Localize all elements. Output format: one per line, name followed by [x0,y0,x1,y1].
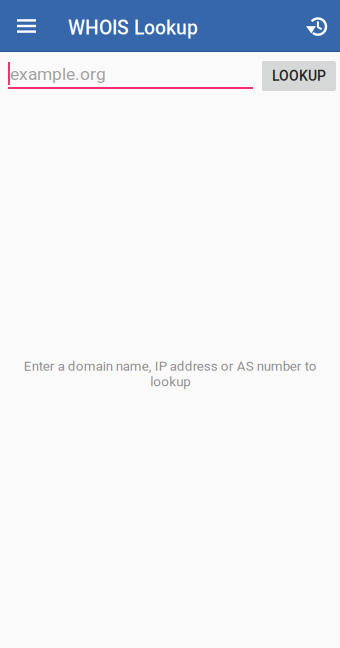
button[interactable]: Menu [0,0,53,52]
staticText: example.org [10,64,106,84]
staticText: Enter a domain name, IP address or AS nu… [23,358,316,390]
button[interactable]: LOOKUP [262,61,336,91]
staticText: LOOKUP [272,68,326,84]
staticText: WHOIS Lookup [68,17,198,39]
button[interactable]: History [292,0,340,52]
